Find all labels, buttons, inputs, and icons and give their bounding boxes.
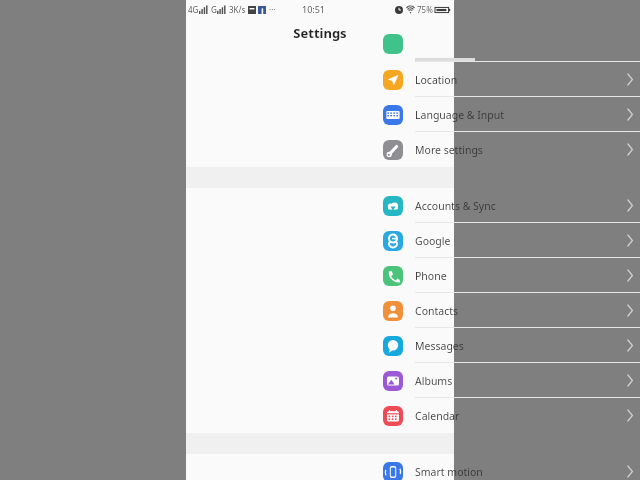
staticText: More settings — [415, 143, 483, 157]
staticText: Location — [415, 73, 458, 87]
staticText: Calendar — [415, 409, 460, 423]
staticText: Settings — [293, 24, 347, 42]
staticText: Accounts & Sync — [415, 199, 496, 213]
staticText: G — [211, 4, 217, 15]
staticText: Phone — [415, 269, 447, 283]
staticText: 10:51 — [302, 3, 326, 15]
staticText: ··· — [269, 4, 276, 15]
button[interactable]: Messages — [186, 328, 454, 363]
staticText: Language & Input — [415, 108, 505, 122]
staticText: Albums — [415, 374, 453, 388]
staticText: Messages — [415, 339, 464, 353]
button[interactable]: Location — [186, 62, 454, 97]
staticText: 75% — [417, 4, 433, 15]
button[interactable]: More settings — [186, 132, 454, 167]
button[interactable]: Google — [186, 223, 454, 258]
staticText: 3K/s — [229, 4, 246, 15]
button[interactable]: Phone — [186, 258, 454, 293]
button[interactable]: Albums — [186, 363, 454, 398]
button[interactable]: Calendar — [186, 398, 454, 433]
staticText: Smart motion — [415, 465, 483, 479]
button[interactable]: Language & Input — [186, 97, 454, 132]
staticText: Contacts — [415, 304, 459, 318]
button[interactable]: Contacts — [186, 293, 454, 328]
button[interactable]: Accounts & Sync — [186, 188, 454, 223]
staticText: Google — [415, 234, 451, 248]
button[interactable] — [186, 40, 454, 62]
staticText: 4G — [188, 4, 199, 15]
button[interactable]: Smart motion — [186, 454, 454, 480]
